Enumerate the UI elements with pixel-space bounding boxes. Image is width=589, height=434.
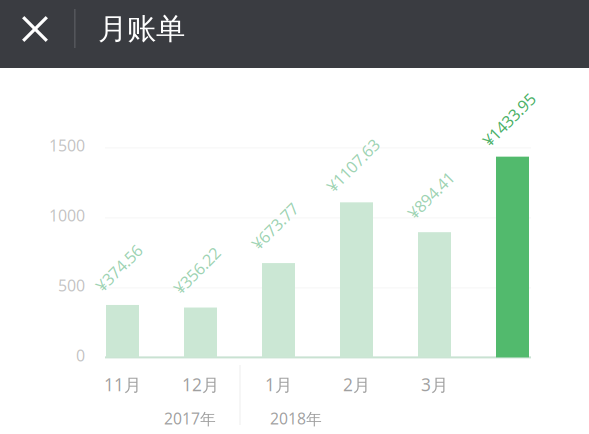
staticText: ¥894.41: [402, 184, 460, 206]
staticText: 3月: [421, 373, 448, 396]
staticText: ¥356.22: [168, 259, 226, 282]
staticText: 11月: [104, 373, 141, 396]
staticText: ¥1107.63: [319, 154, 386, 176]
staticText: 2月: [343, 373, 370, 396]
button[interactable]: Close: [5, 4, 65, 54]
staticText: 500: [58, 274, 85, 296]
staticText: 12月: [182, 373, 219, 396]
staticText: 1月: [265, 373, 292, 396]
staticText: ¥374.56: [90, 257, 148, 279]
staticText: 0: [76, 344, 85, 366]
staticText: 2017年: [164, 408, 216, 429]
staticText: 1500: [49, 134, 85, 156]
staticText: 月账单: [98, 10, 185, 47]
staticText: 2018年: [270, 408, 322, 429]
staticText: 1000: [49, 204, 85, 226]
staticText: ¥1433.95: [475, 109, 542, 131]
staticText: ¥673.77: [246, 215, 304, 237]
